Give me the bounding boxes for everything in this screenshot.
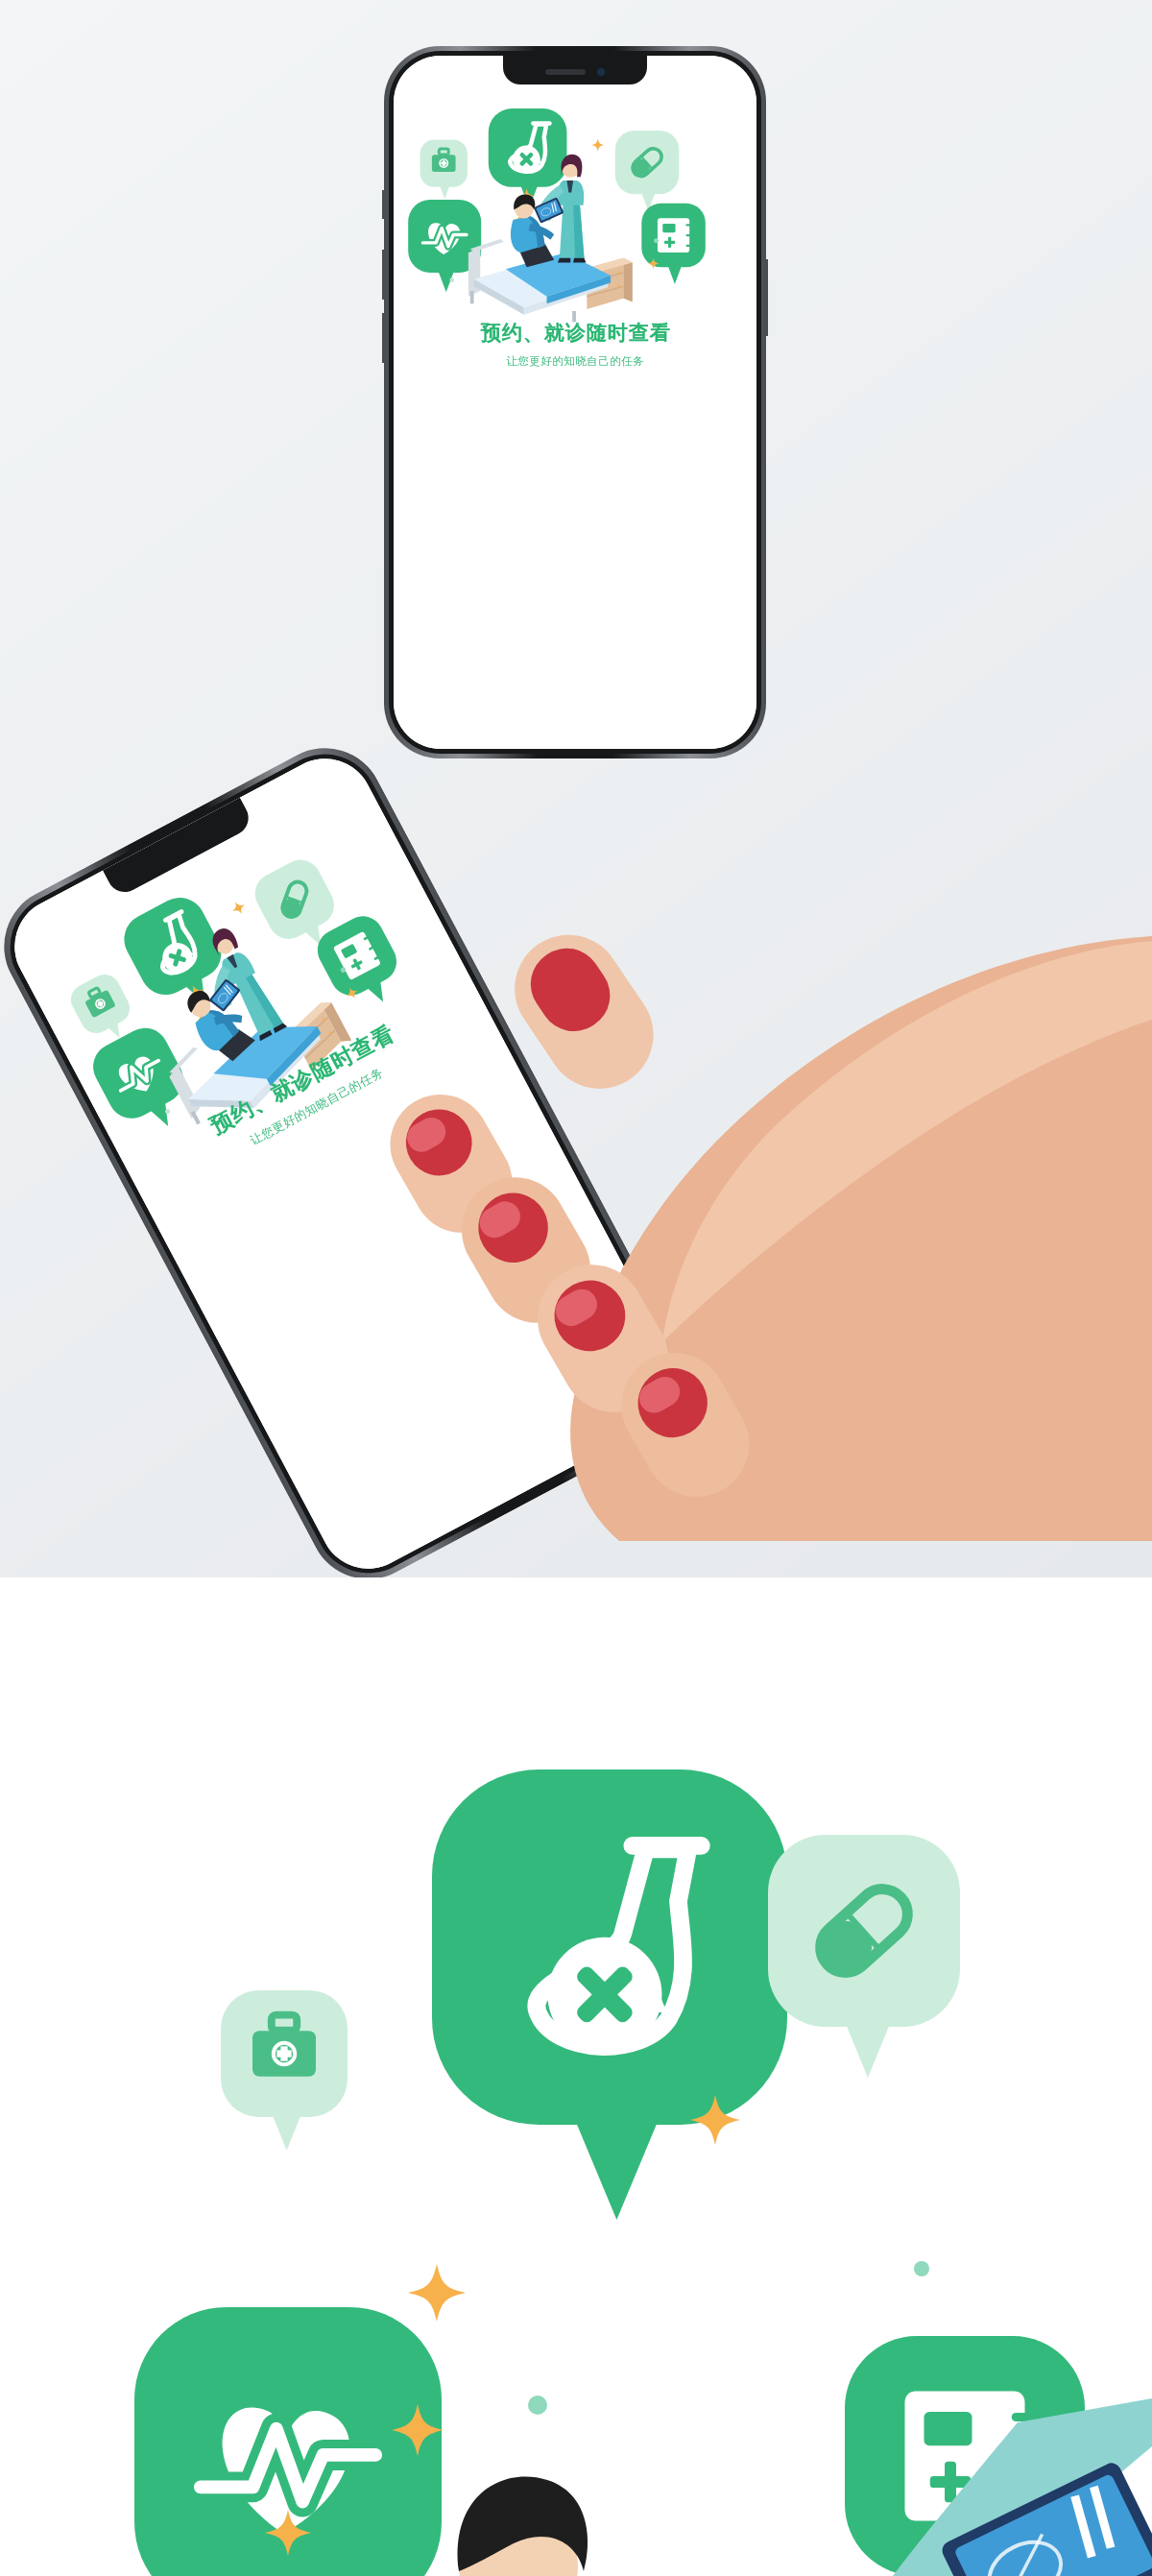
staticText: 预约、就诊随时查看: [205, 1020, 399, 1141]
staticText: 让您更好的知晓自己的任务: [247, 1065, 386, 1148]
button[interactable]: App preview held in hand: [0, 727, 710, 1600]
button[interactable]: App preview on phone: [384, 46, 766, 758]
staticText: 让您更好的知晓自己的任务: [506, 354, 644, 368]
staticText: 预约、就诊随时查看: [480, 321, 670, 346]
